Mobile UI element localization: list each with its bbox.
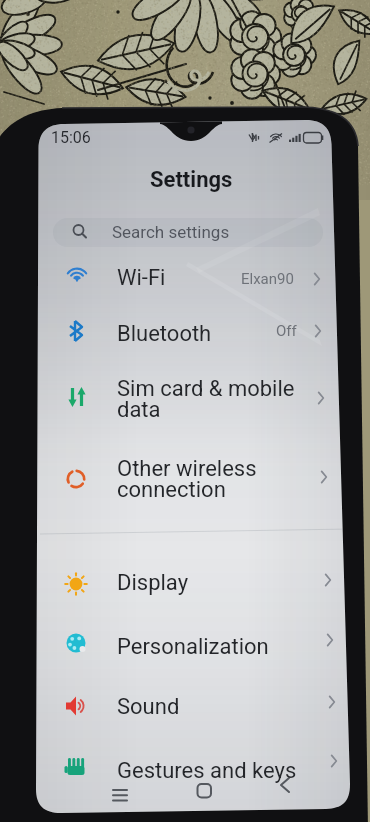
button[interactable]: Personalization — [40, 612, 345, 672]
staticText: Settings — [150, 167, 233, 193]
staticText: Other wireless — [117, 456, 257, 482]
button[interactable]: Display — [40, 552, 345, 612]
staticText: Gestures and keys — [117, 758, 297, 784]
staticText: Display — [117, 570, 189, 596]
staticText: Sound — [117, 694, 180, 720]
staticText: Search settings — [112, 222, 230, 242]
button[interactable]: Sound — [40, 674, 345, 734]
button[interactable]: Wi-Fi — [40, 254, 345, 306]
staticText: Sim card & mobile — [117, 376, 295, 402]
button[interactable]: Search settings — [53, 218, 323, 247]
staticText: Bluetooth — [117, 321, 212, 347]
button[interactable]: Bluetooth — [40, 306, 345, 358]
button[interactable]: Sim card & mobile data — [40, 360, 345, 436]
staticText: Off — [276, 322, 297, 340]
staticText: 15:06 — [51, 128, 91, 147]
button[interactable]: Recents — [100, 776, 142, 806]
button[interactable]: Gestures and keys — [40, 734, 345, 790]
button[interactable]: Back — [264, 772, 306, 802]
button[interactable]: Other wireless connection — [40, 440, 345, 516]
staticText: Personalization — [117, 634, 269, 660]
button[interactable]: Home — [183, 776, 225, 806]
staticText: Elxan90 — [241, 270, 294, 288]
staticText: data — [117, 397, 161, 423]
staticText: Wi-Fi — [117, 265, 166, 291]
staticText: connection — [117, 477, 226, 503]
